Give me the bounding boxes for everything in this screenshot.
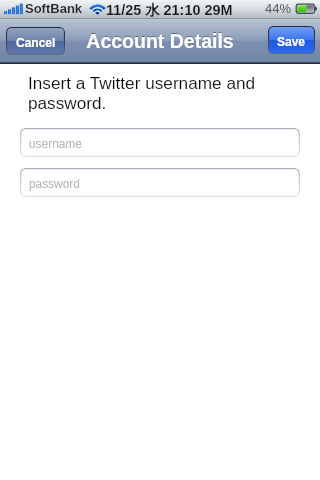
staticText: Cancel — [16, 36, 56, 49]
staticText: username — [29, 137, 82, 150]
staticText: password — [29, 177, 80, 190]
staticText: 11/25 水 21:10 29M — [106, 1, 233, 19]
button[interactable]: Cancel — [6, 27, 65, 55]
button[interactable]: username — [20, 128, 300, 157]
button[interactable]: password — [20, 168, 300, 197]
staticText: Insert a Twitter username and password. — [28, 73, 283, 113]
button[interactable]: Save — [268, 26, 315, 54]
staticText: Account Details — [86, 30, 234, 52]
staticText: Account Details — [86, 29, 234, 51]
staticText: 44% — [265, 1, 292, 16]
staticText: SoftBank — [25, 1, 83, 16]
staticText: Save — [277, 35, 306, 48]
